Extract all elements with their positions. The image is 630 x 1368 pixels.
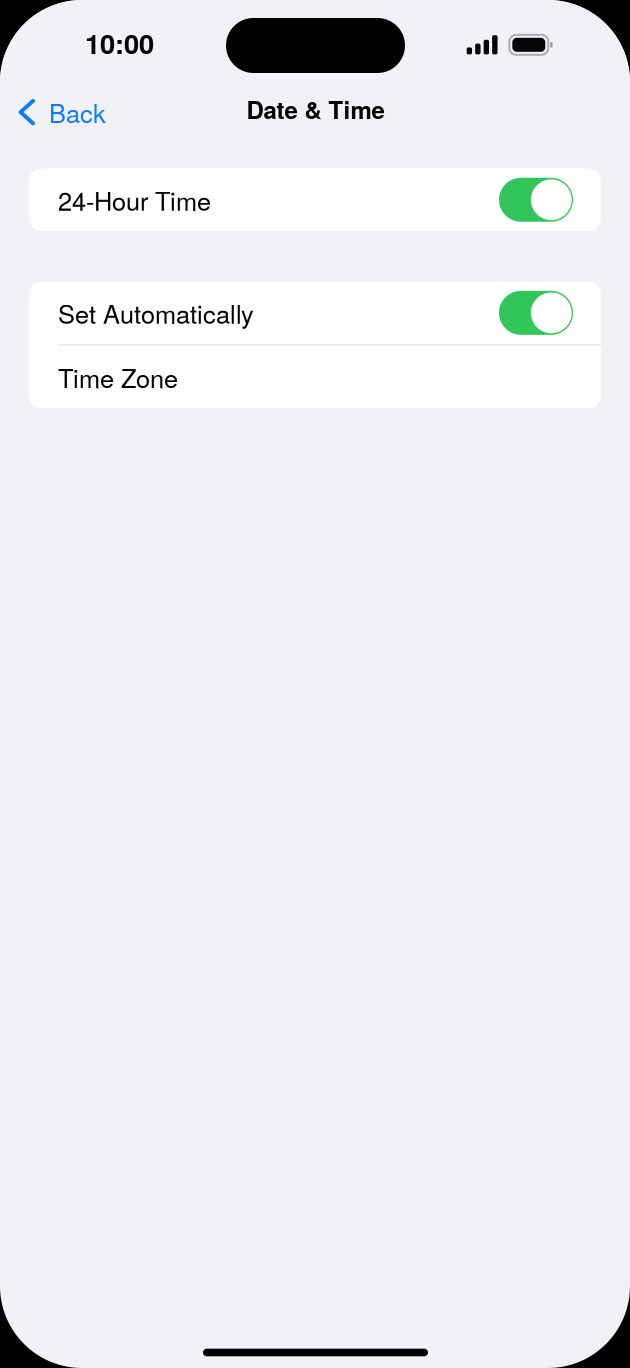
button[interactable]: Back xyxy=(0,85,124,139)
button[interactable]: 24-Hour Time xyxy=(29,168,601,231)
button[interactable]: Time Zone xyxy=(29,345,601,408)
staticText: Back xyxy=(49,94,106,130)
staticText: Date & Time xyxy=(246,92,384,126)
staticText: Time Zone xyxy=(58,359,178,395)
staticText: 24-Hour Time xyxy=(58,182,211,218)
button[interactable]: Set Automatically xyxy=(29,281,601,344)
staticText: Set Automatically xyxy=(58,295,254,331)
staticText: 10:00 xyxy=(85,23,154,62)
